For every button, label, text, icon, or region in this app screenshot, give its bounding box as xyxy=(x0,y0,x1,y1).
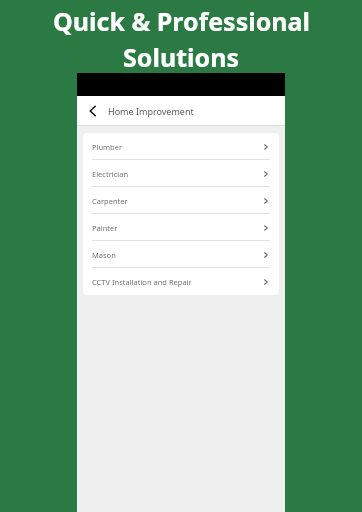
button[interactable]: Plumber xyxy=(83,133,279,160)
staticText: Electrician xyxy=(92,169,262,179)
button[interactable]: Back xyxy=(85,103,101,119)
button[interactable]: Electrician xyxy=(83,160,279,187)
button[interactable]: Mason xyxy=(83,241,279,268)
button[interactable]: Carpenter xyxy=(83,187,279,214)
staticText: Quick & Professional xyxy=(53,4,310,38)
staticText: Plumber xyxy=(92,142,262,152)
button[interactable]: CCTV Installation and Repair xyxy=(83,268,279,295)
staticText: Mason xyxy=(92,250,262,260)
button[interactable]: Painter xyxy=(83,214,279,241)
staticText: Painter xyxy=(92,223,262,233)
staticText: CCTV Installation and Repair xyxy=(92,277,262,287)
staticText: Carpenter xyxy=(92,196,262,206)
staticText: Solutions xyxy=(123,40,239,74)
staticText: Home Improvement xyxy=(108,105,194,117)
